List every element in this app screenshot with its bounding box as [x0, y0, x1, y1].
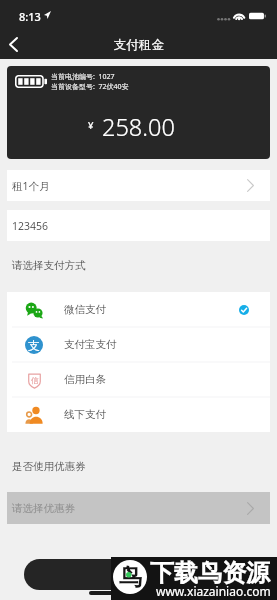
- staticText: 当前电池编号: 1027: [51, 72, 115, 82]
- staticText: 微信支付: [64, 303, 106, 316]
- button[interactable]: 123456: [7, 210, 270, 241]
- staticText: ¥: [88, 119, 94, 132]
- staticText: 线下支付: [64, 408, 106, 421]
- staticText: 鸟: [119, 563, 142, 592]
- button[interactable]: 线下支付: [7, 397, 270, 432]
- staticText: 信用白条: [64, 373, 106, 386]
- button[interactable]: 租1个月: [7, 170, 270, 201]
- staticText: 支付租金: [114, 37, 164, 53]
- button[interactable]: Back: [0, 28, 29, 60]
- staticText: 123456: [12, 219, 49, 233]
- staticText: 当前设备型号: 72伏40安: [51, 82, 129, 92]
- staticText: 支: [28, 338, 40, 353]
- staticText: 信: [31, 376, 39, 385]
- staticText: 确认支付: [117, 568, 161, 582]
- staticText: 下载鸟资源: [150, 558, 270, 588]
- staticText: 是否使用优惠券: [12, 460, 86, 473]
- button[interactable]: 信: [7, 362, 270, 397]
- button[interactable]: 确认支付: [24, 559, 253, 590]
- staticText: www.xiazainiao.com: [156, 583, 271, 599]
- staticText: 支付宝支付: [64, 338, 117, 351]
- button[interactable]: 微信支付: [7, 292, 270, 327]
- button[interactable]: 支: [7, 327, 270, 362]
- staticText: 请选择优惠券: [12, 502, 75, 515]
- staticText: 租1个月: [12, 179, 50, 193]
- staticText: 258.00: [102, 111, 175, 143]
- staticText: 8:13: [19, 9, 41, 24]
- staticText: 请选择支付方式: [12, 259, 86, 272]
- button[interactable]: 请选择优惠券: [7, 492, 270, 524]
